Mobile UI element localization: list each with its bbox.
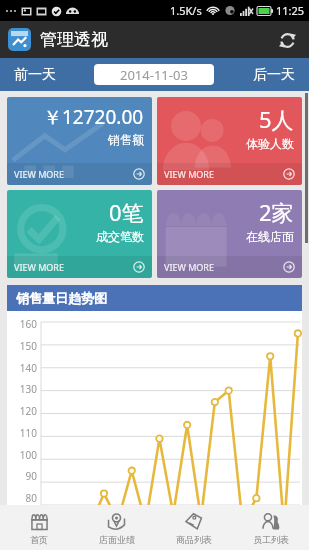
- staticText: VIEW MORE: [14, 261, 64, 273]
- staticText: 销售额: [108, 132, 144, 147]
- staticText: ￥12720.00: [43, 104, 144, 130]
- staticText: 体验人数: [246, 136, 294, 151]
- button[interactable]: ￥12720.00: [7, 97, 152, 185]
- staticText: 11:25: [276, 3, 305, 18]
- staticText: 90: [25, 469, 37, 483]
- staticText: 1.5K/s: [170, 3, 202, 18]
- staticText: 80: [25, 491, 37, 505]
- button[interactable]: 商品列表: [155, 505, 232, 550]
- button[interactable]: 0笔: [7, 190, 152, 278]
- button[interactable]: 首页: [0, 505, 78, 550]
- button[interactable]: 后一天: [249, 62, 299, 88]
- button[interactable]: 5人: [157, 97, 302, 185]
- staticText: 前一天: [14, 66, 56, 84]
- button[interactable]: 2家: [157, 190, 302, 278]
- staticText: 2家: [259, 197, 294, 227]
- button[interactable]: 员工列表: [232, 505, 309, 550]
- staticText: 0笔: [109, 197, 144, 227]
- staticText: 2014-11-03: [120, 66, 188, 84]
- button[interactable]: Refresh: [273, 26, 301, 54]
- staticText: 首页: [30, 534, 48, 545]
- staticText: 100: [19, 448, 37, 462]
- staticText: 在线店面: [246, 229, 294, 244]
- staticText: 成交笔数: [96, 229, 144, 244]
- button[interactable]: 2014-11-03: [94, 64, 214, 85]
- staticText: 150: [19, 339, 37, 353]
- staticText: 商品列表: [176, 534, 212, 545]
- staticText: 5人: [259, 104, 294, 134]
- staticText: 后一天: [253, 66, 295, 84]
- staticText: VIEW MORE: [164, 261, 214, 273]
- staticText: 110: [19, 426, 37, 440]
- staticText: VIEW MORE: [164, 168, 214, 180]
- staticText: 140: [19, 361, 37, 375]
- button[interactable]: 前一天: [10, 62, 60, 88]
- button[interactable]: 店面业绩: [78, 505, 155, 550]
- staticText: 销售量日趋势图: [16, 290, 107, 306]
- staticText: 160: [19, 317, 37, 331]
- staticText: 店面业绩: [99, 534, 135, 545]
- staticText: VIEW MORE: [14, 168, 64, 180]
- staticText: 员工列表: [253, 534, 289, 545]
- staticText: 120: [19, 404, 37, 418]
- staticText: 管理透视: [40, 29, 108, 50]
- staticText: 130: [19, 382, 37, 396]
